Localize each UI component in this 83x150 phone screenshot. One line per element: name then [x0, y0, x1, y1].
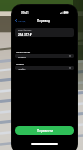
staticText: Назад — [18, 19, 26, 22]
staticText: 254 317 ₽ — [18, 33, 32, 37]
staticText: Сумма — [18, 55, 26, 58]
button[interactable]: Назад — [15, 19, 26, 22]
button[interactable]: Перевести — [15, 126, 74, 135]
button[interactable]: Сумма — [15, 54, 74, 58]
staticText: Ваш баланс: — [18, 29, 32, 32]
button[interactable]: Ваш баланс: — [15, 28, 74, 37]
staticText: Сумма — [16, 62, 24, 65]
staticText: Чтобы — [18, 67, 26, 70]
staticText: Перевод — [37, 19, 50, 23]
staticText: Перевести — [37, 129, 53, 133]
staticText: Получателю — [16, 50, 31, 53]
staticText: 09:41 — [21, 11, 29, 15]
button[interactable]: Чтобы — [15, 66, 74, 70]
